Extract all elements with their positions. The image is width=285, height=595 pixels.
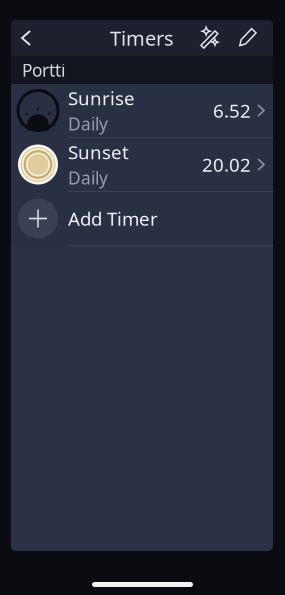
button[interactable]: Sunset bbox=[11, 138, 273, 192]
staticText: Sunset bbox=[68, 140, 129, 164]
button[interactable]: Add Timer bbox=[11, 192, 273, 246]
button[interactable]: Sunrise bbox=[11, 84, 273, 138]
staticText: 20.02 bbox=[202, 152, 251, 177]
staticText: 6.52 bbox=[213, 98, 251, 123]
staticText: Daily bbox=[68, 166, 108, 189]
staticText: Portti bbox=[22, 58, 65, 81]
staticText: Sunrise bbox=[68, 86, 135, 110]
button[interactable]: Edit bbox=[232, 20, 262, 56]
staticText: Add Timer bbox=[68, 206, 158, 231]
button[interactable]: Back bbox=[11, 20, 41, 56]
staticText: Timers bbox=[110, 25, 174, 51]
button[interactable]: Suggest timers bbox=[196, 20, 226, 56]
staticText: Daily bbox=[68, 112, 108, 135]
